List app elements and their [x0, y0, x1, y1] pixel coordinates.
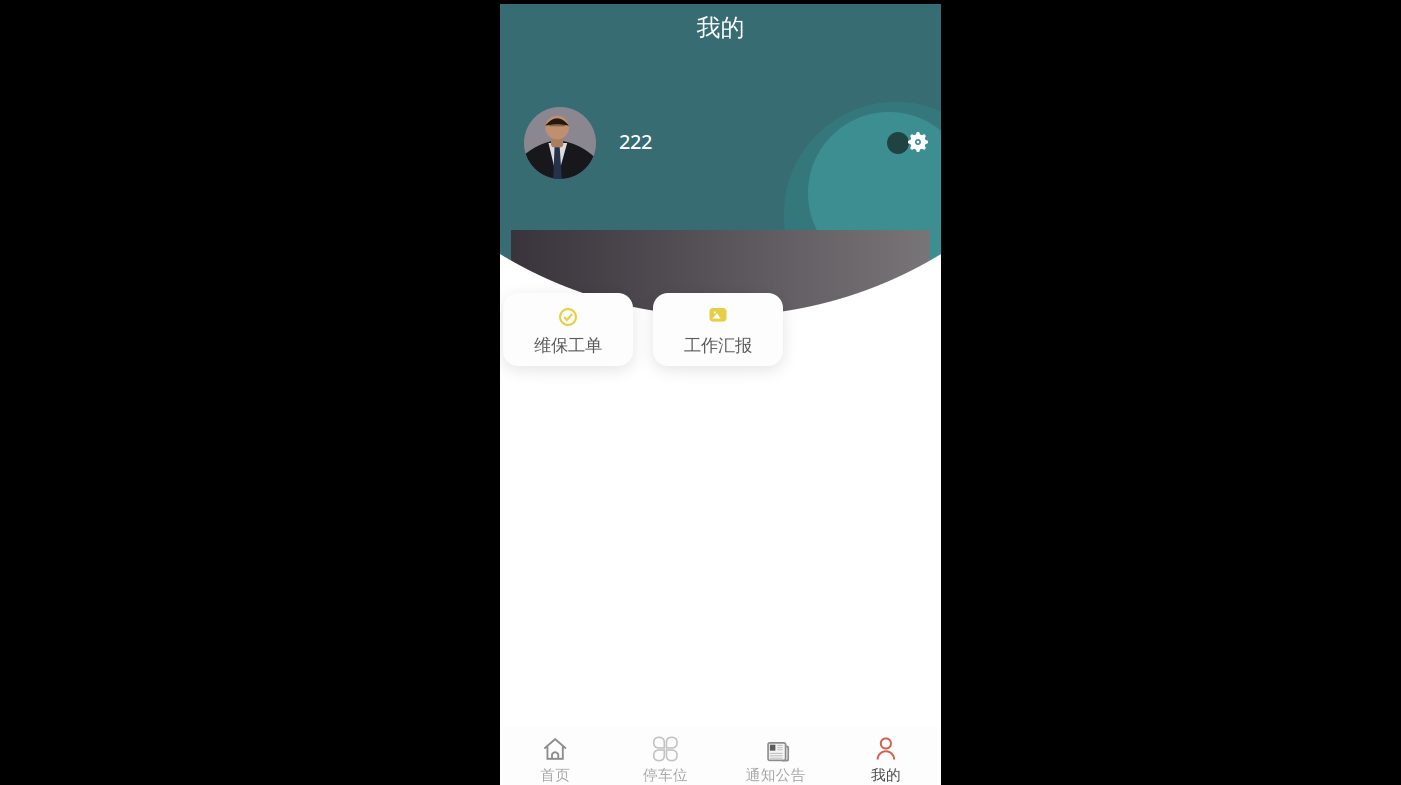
button[interactable]: 停车位 — [610, 726, 720, 785]
button[interactable]: 工作汇报 — [653, 293, 783, 366]
staticText: 首页 — [540, 766, 570, 784]
staticText: 工作汇报 — [684, 335, 752, 356]
button[interactable]: 我的 — [831, 726, 941, 785]
button[interactable]: 通知公告 — [720, 726, 831, 785]
staticText: 222 — [619, 128, 652, 155]
button[interactable]: 首页 — [500, 726, 610, 785]
button[interactable]: 维保工单 — [503, 293, 633, 366]
staticText: 维保工单 — [534, 335, 602, 356]
staticText: 停车位 — [643, 766, 688, 784]
staticText: 我的 — [871, 766, 901, 784]
staticText: 我的 — [696, 13, 744, 42]
staticText: 通知公告 — [746, 766, 806, 784]
